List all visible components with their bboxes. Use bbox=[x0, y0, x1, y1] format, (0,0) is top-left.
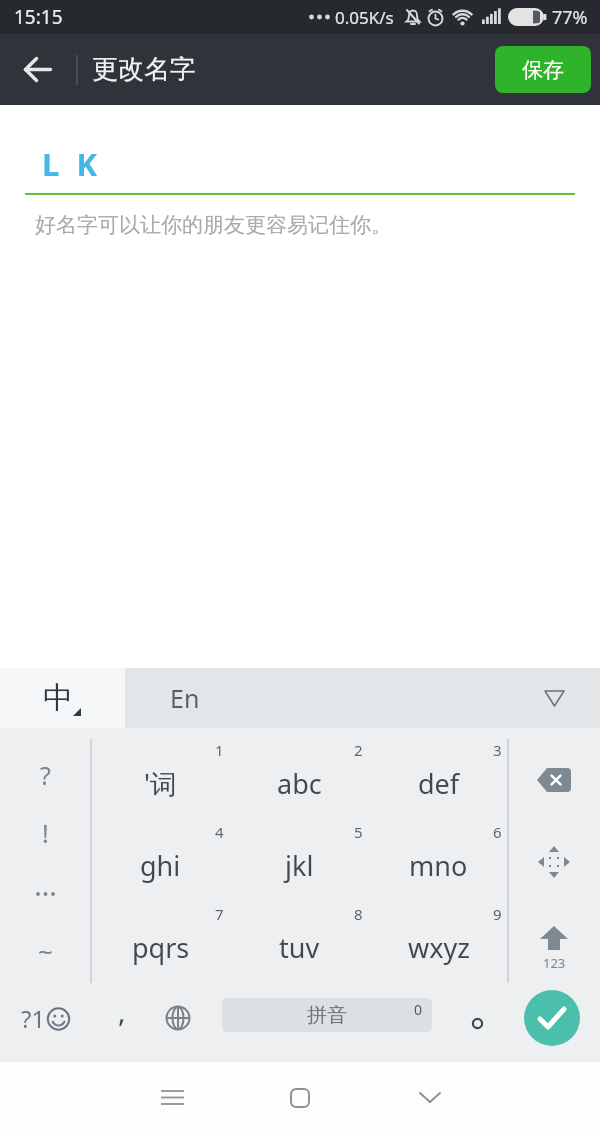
button[interactable]: ! bbox=[0, 805, 91, 861]
button[interactable]: 保存 bbox=[495, 46, 591, 93]
button[interactable]: 拼音 bbox=[222, 998, 432, 1032]
staticText: ghi bbox=[140, 847, 181, 884]
staticText: mno bbox=[409, 847, 468, 884]
staticText: 4 bbox=[215, 822, 224, 842]
button[interactable] bbox=[120, 1062, 224, 1133]
staticText: 3 bbox=[493, 740, 502, 760]
staticText: def bbox=[418, 765, 460, 802]
staticText: 15:15 bbox=[14, 4, 63, 30]
button[interactable]: ghi bbox=[91, 810, 230, 892]
staticText: En bbox=[170, 681, 200, 715]
staticText: , bbox=[118, 992, 126, 1030]
button[interactable]: def bbox=[369, 728, 508, 810]
button[interactable]: En bbox=[125, 668, 600, 728]
staticText: 拼音 bbox=[307, 1003, 347, 1028]
staticText: 2 bbox=[354, 740, 363, 760]
button[interactable] bbox=[153, 974, 203, 1062]
staticText: ! bbox=[42, 816, 49, 850]
staticText: ?1 bbox=[21, 1002, 46, 1035]
button[interactable] bbox=[248, 1062, 352, 1133]
button[interactable]: tuv bbox=[230, 892, 369, 974]
staticText: 保存 bbox=[522, 57, 564, 83]
staticText: 中 bbox=[43, 679, 73, 717]
staticText: 9 bbox=[493, 904, 502, 924]
staticText: '词 bbox=[144, 765, 178, 802]
button[interactable]: 中 bbox=[0, 668, 125, 728]
button[interactable] bbox=[0, 861, 91, 927]
button[interactable]: 123 bbox=[508, 892, 600, 974]
button[interactable]: ? bbox=[0, 745, 91, 805]
staticText: 6 bbox=[493, 822, 502, 842]
button[interactable]: pqrs bbox=[91, 892, 230, 974]
staticText: ? bbox=[40, 758, 51, 792]
button[interactable] bbox=[378, 1062, 482, 1133]
button[interactable]: ~ bbox=[0, 927, 91, 974]
button[interactable]: mno bbox=[369, 810, 508, 892]
staticText: 好名字可以让你的朋友更容易记住你。 bbox=[35, 212, 392, 238]
staticText: L K bbox=[42, 143, 102, 185]
staticText: 77% bbox=[552, 5, 588, 30]
button[interactable]: wxyz bbox=[369, 892, 508, 974]
staticText: 0.05K/s bbox=[335, 6, 394, 29]
button[interactable]: abc bbox=[230, 728, 369, 810]
button[interactable] bbox=[508, 810, 600, 892]
staticText: abc bbox=[277, 765, 322, 802]
button[interactable] bbox=[524, 990, 580, 1046]
staticText: 123 bbox=[543, 954, 566, 972]
staticText: 1 bbox=[215, 740, 224, 760]
staticText: wxyz bbox=[408, 929, 470, 966]
button[interactable] bbox=[0, 34, 76, 105]
staticText: 0 bbox=[414, 1000, 423, 1019]
button[interactable]: jkl bbox=[230, 810, 369, 892]
button[interactable]: , bbox=[91, 974, 153, 1062]
button[interactable] bbox=[508, 728, 600, 810]
button[interactable]: '词 bbox=[91, 728, 230, 810]
staticText: 5 bbox=[354, 822, 363, 842]
staticText: 8 bbox=[354, 904, 363, 924]
staticText: ~ bbox=[38, 933, 53, 968]
staticText: pqrs bbox=[132, 929, 190, 966]
button[interactable] bbox=[432, 974, 522, 1062]
staticText: tuv bbox=[279, 929, 320, 966]
button[interactable]: ?1 bbox=[0, 974, 91, 1062]
staticText: jkl bbox=[285, 847, 314, 884]
staticText: 更改名字 bbox=[92, 53, 196, 86]
staticText: 7 bbox=[215, 904, 224, 924]
